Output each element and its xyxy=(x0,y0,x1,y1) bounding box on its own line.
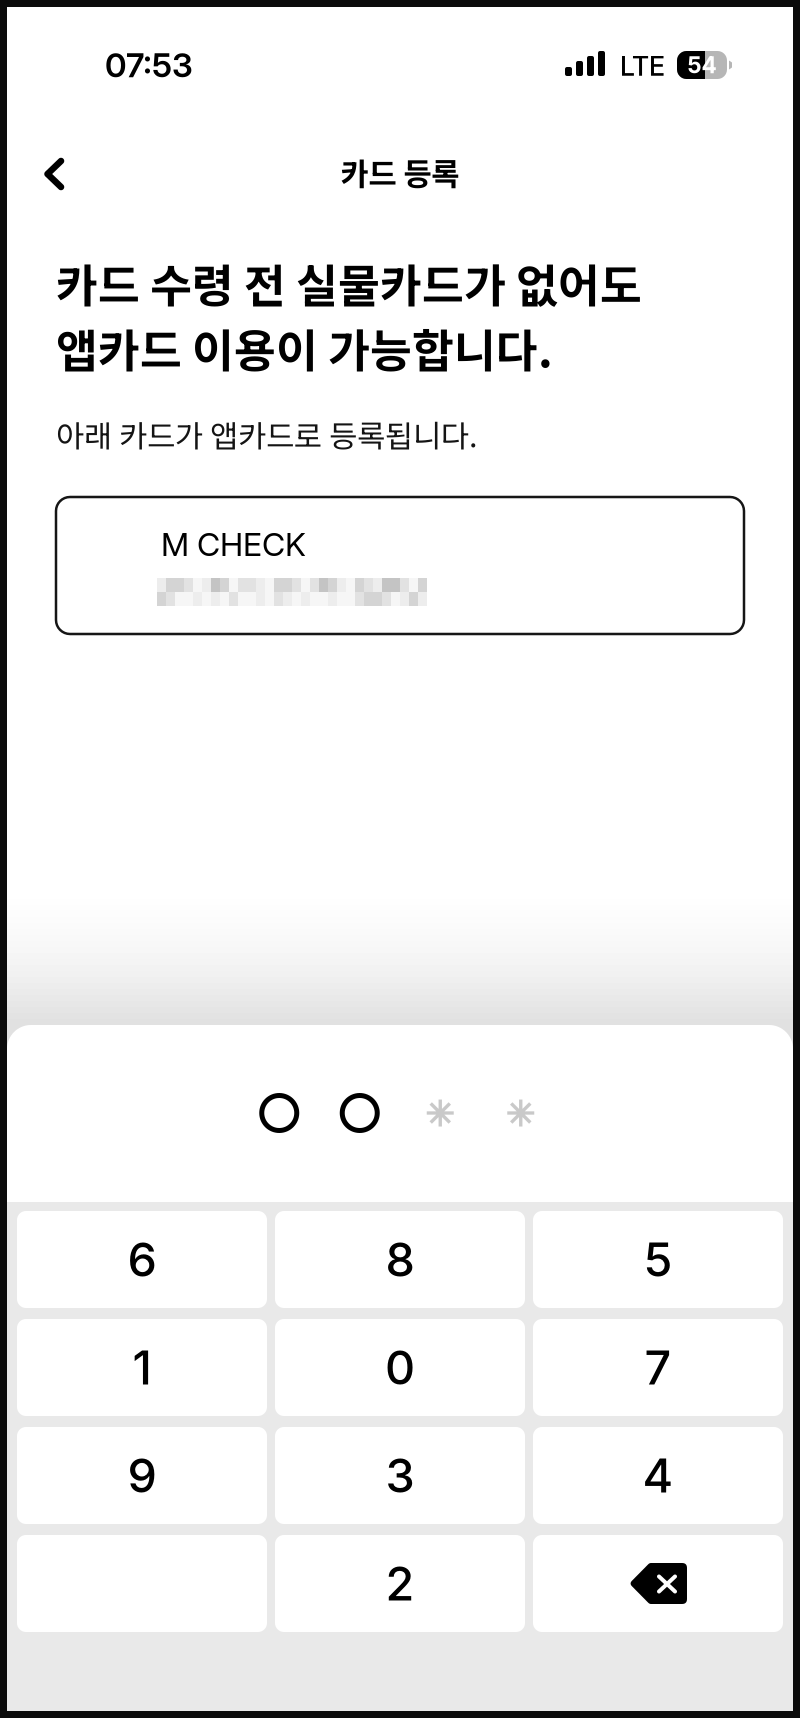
staticText: 3 xyxy=(385,1447,414,1504)
button[interactable]: 7 xyxy=(533,1319,783,1416)
button[interactable]: 6 xyxy=(17,1211,267,1308)
button[interactable]: 3 xyxy=(275,1427,525,1524)
button[interactable]: 2 xyxy=(275,1535,525,1632)
button[interactable]: 9 xyxy=(17,1427,267,1524)
staticText: 카드 수령 전 실물카드가 없어도 xyxy=(56,250,642,316)
staticText: 카드 등록 xyxy=(340,150,459,194)
staticText: LTE xyxy=(620,50,665,82)
button[interactable]: 5 xyxy=(533,1211,783,1308)
button[interactable]: 4 xyxy=(533,1427,783,1524)
staticText: 54 xyxy=(687,51,716,79)
staticText: 아래 카드가 앱카드로 등록됩니다. xyxy=(56,412,478,456)
button[interactable]: Delete xyxy=(533,1535,783,1632)
staticText: 앱카드 이용이 가능합니다. xyxy=(56,315,553,381)
button[interactable]: 8 xyxy=(275,1211,525,1308)
staticText: 5 xyxy=(643,1231,672,1288)
staticText: M CHECK xyxy=(161,525,306,564)
button[interactable]: 1 xyxy=(17,1319,267,1416)
staticText: 2 xyxy=(385,1555,414,1612)
staticText: 9 xyxy=(127,1447,156,1504)
staticText: 6 xyxy=(127,1231,156,1288)
staticText: 8 xyxy=(385,1231,414,1288)
staticText: 1 xyxy=(132,1339,151,1396)
staticText: 4 xyxy=(642,1447,673,1504)
staticText: 07:53 xyxy=(105,45,193,85)
staticText: 7 xyxy=(644,1339,671,1396)
staticText: 0 xyxy=(385,1339,415,1396)
button[interactable]: M CHECK xyxy=(56,497,744,634)
button[interactable]: 0 xyxy=(275,1319,525,1416)
button[interactable]: Back xyxy=(19,136,89,212)
